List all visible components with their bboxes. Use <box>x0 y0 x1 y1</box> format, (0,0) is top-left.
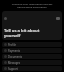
staticText: Support <box>8 67 18 71</box>
button[interactable]: Close <box>2 11 62 40</box>
staticText: Payments <box>8 49 21 53</box>
staticText: Messages <box>8 61 21 65</box>
staticText: Continue your registration and get perso… <box>2 2 62 8</box>
staticText: Tell us a bit about yourself <box>4 28 40 38</box>
button[interactable]: Support <box>2 66 62 71</box>
staticText: Documents <box>8 55 22 59</box>
button[interactable]: Payments <box>2 48 62 53</box>
staticText: Profile <box>8 43 16 47</box>
button[interactable]: Messages <box>2 60 62 65</box>
button[interactable]: Close <box>56 17 60 20</box>
button[interactable]: Documents <box>2 54 62 59</box>
button[interactable]: Profile <box>2 42 62 47</box>
